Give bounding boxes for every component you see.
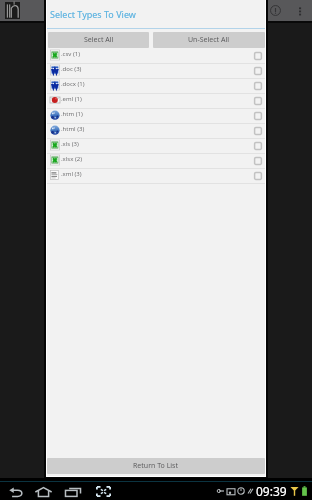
button[interactable]: App icon: [3, 0, 22, 21]
button[interactable]: Return To List: [47, 458, 265, 474]
button[interactable]: Info: [263, 0, 287, 21]
button[interactable]: .htm (1): [47, 109, 265, 123]
staticText: Select All: [84, 35, 114, 45]
staticText: .eml (1): [61, 95, 82, 103]
button[interactable]: .xml (3): [47, 169, 265, 183]
staticText: .html (3): [61, 125, 85, 133]
button[interactable]: Back: [2, 482, 29, 500]
staticText: .xls (3): [61, 140, 79, 148]
button[interactable]: Recent apps: [57, 482, 88, 500]
staticText: .docx (1): [61, 80, 85, 88]
button[interactable]: .xlsx (2): [47, 154, 265, 168]
staticText: .csv (1): [61, 50, 81, 58]
staticText: .xlsx (2): [61, 155, 82, 163]
staticText: Select Types To View: [50, 8, 136, 20]
button[interactable]: .docx (1): [47, 79, 265, 93]
button[interactable]: Select All: [48, 32, 149, 48]
staticText: Return To List: [133, 461, 179, 471]
button[interactable]: .eml (1): [47, 94, 265, 108]
staticText: .htm (1): [61, 110, 83, 118]
staticText: .xml (3): [61, 170, 82, 178]
button[interactable]: Un-Select All: [153, 32, 265, 48]
button[interactable]: More options: [287, 0, 312, 21]
staticText: .doc (3): [61, 65, 82, 73]
button[interactable]: .doc (3): [47, 64, 265, 78]
button[interactable]: Home: [29, 482, 57, 500]
button[interactable]: .xls (3): [47, 139, 265, 153]
staticText: Un-Select All: [188, 35, 230, 45]
button[interactable]: .html (3): [47, 124, 265, 138]
button[interactable]: .csv (1): [47, 49, 265, 63]
staticText: 09:39: [256, 483, 287, 499]
button[interactable]: Screenshot: [88, 482, 118, 500]
